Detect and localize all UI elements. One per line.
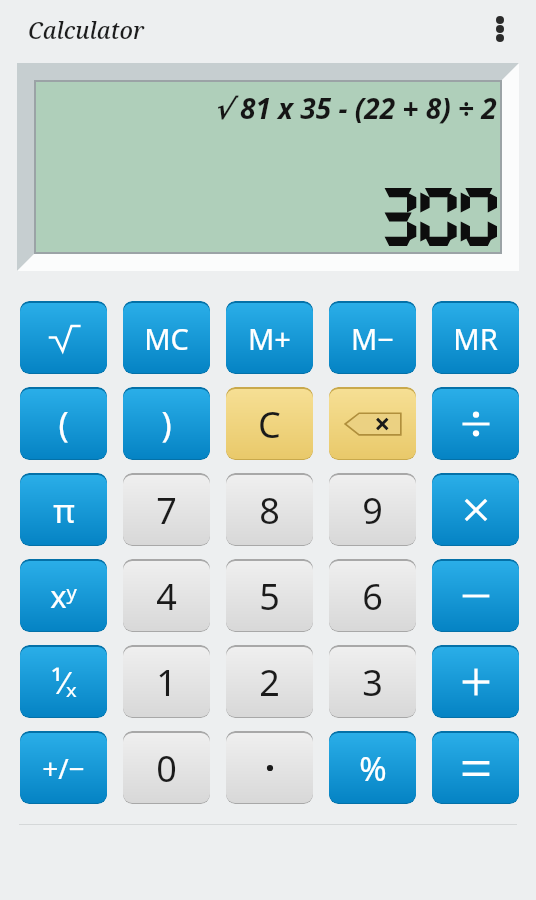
staticText: 5 [259,572,280,621]
button[interactable]: 2 [226,645,313,718]
button[interactable]: 3 [329,645,416,718]
staticText: % [359,746,387,791]
button[interactable]: Equals [432,731,519,804]
button[interactable]: ¹⁄ₓ [20,645,107,718]
staticText: MC [144,319,189,358]
staticText: +/− [42,749,85,787]
staticText: 6 [362,572,383,621]
button[interactable]: xʸ [20,559,107,632]
staticText: Calculator [28,14,145,45]
staticText: 3 [362,658,383,707]
button[interactable]: 0 [123,731,210,804]
button[interactable]: MR [432,301,519,374]
staticText: 0 [156,744,177,793]
staticText: ( [58,401,69,447]
button[interactable]: M− [329,301,416,374]
button[interactable]: ) [123,387,210,460]
staticText: C [258,400,281,449]
button[interactable]: Multiply [432,473,519,546]
button[interactable]: Backspace [329,387,416,460]
button[interactable]: M+ [226,301,313,374]
staticText: ) [161,401,172,447]
button[interactable]: More options [478,7,522,51]
button[interactable]: 5 [226,559,313,632]
button[interactable]: π [20,473,107,546]
button[interactable]: MC [123,301,210,374]
button[interactable]: +/− [20,731,107,804]
staticText: 7 [156,486,177,535]
button[interactable]: C [226,387,313,460]
button[interactable]: 7 [123,473,210,546]
staticText: 8 [259,486,280,535]
staticText: xʸ [50,575,77,617]
staticText: 1 [156,658,177,707]
staticText: 4 [156,572,177,621]
staticText: √ 81 x 35 - (22 + 8) ÷ 2 [214,89,497,127]
button[interactable]: Divide [432,387,519,460]
button[interactable]: Add [432,645,519,718]
staticText: ¹⁄ₓ [51,661,77,703]
staticText: 2 [259,658,280,707]
button[interactable]: Decimal point [226,731,313,804]
button[interactable]: 4 [123,559,210,632]
staticText: MR [453,319,498,358]
staticText: 9 [362,486,383,535]
staticText: π [53,488,75,533]
button[interactable]: 9 [329,473,416,546]
button[interactable]: 6 [329,559,416,632]
button[interactable]: 8 [226,473,313,546]
button[interactable]: Subtract [432,559,519,632]
button[interactable]: ( [20,387,107,460]
button[interactable]: Square root [20,301,107,374]
button[interactable]: % [329,731,416,804]
staticText: M+ [248,319,291,358]
button[interactable]: 1 [123,645,210,718]
staticText: M− [351,319,394,358]
